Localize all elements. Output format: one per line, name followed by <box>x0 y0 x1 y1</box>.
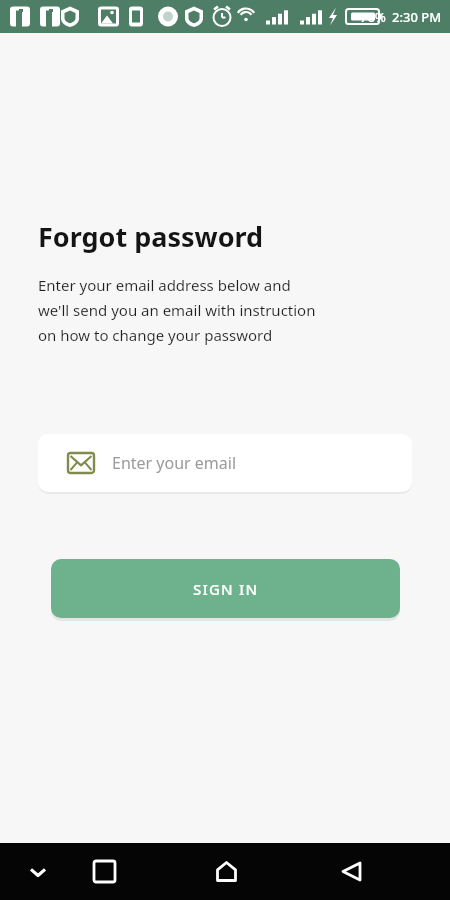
staticText: 76% <box>360 8 386 26</box>
button[interactable]: Home <box>200 843 252 900</box>
staticText: Enter your email address below and we'll… <box>38 275 316 345</box>
button[interactable]: SIGN IN <box>51 559 400 618</box>
button[interactable]: Hide keyboard <box>10 843 66 900</box>
button[interactable]: Back <box>325 843 377 900</box>
staticText: Enter your email <box>112 452 237 474</box>
staticText: SIGN IN <box>193 579 259 599</box>
staticText: Forgot password <box>38 218 264 255</box>
staticText: 2:30 PM <box>392 8 442 26</box>
button[interactable]: Enter your email <box>38 434 412 492</box>
button[interactable]: Recent apps <box>78 843 130 900</box>
